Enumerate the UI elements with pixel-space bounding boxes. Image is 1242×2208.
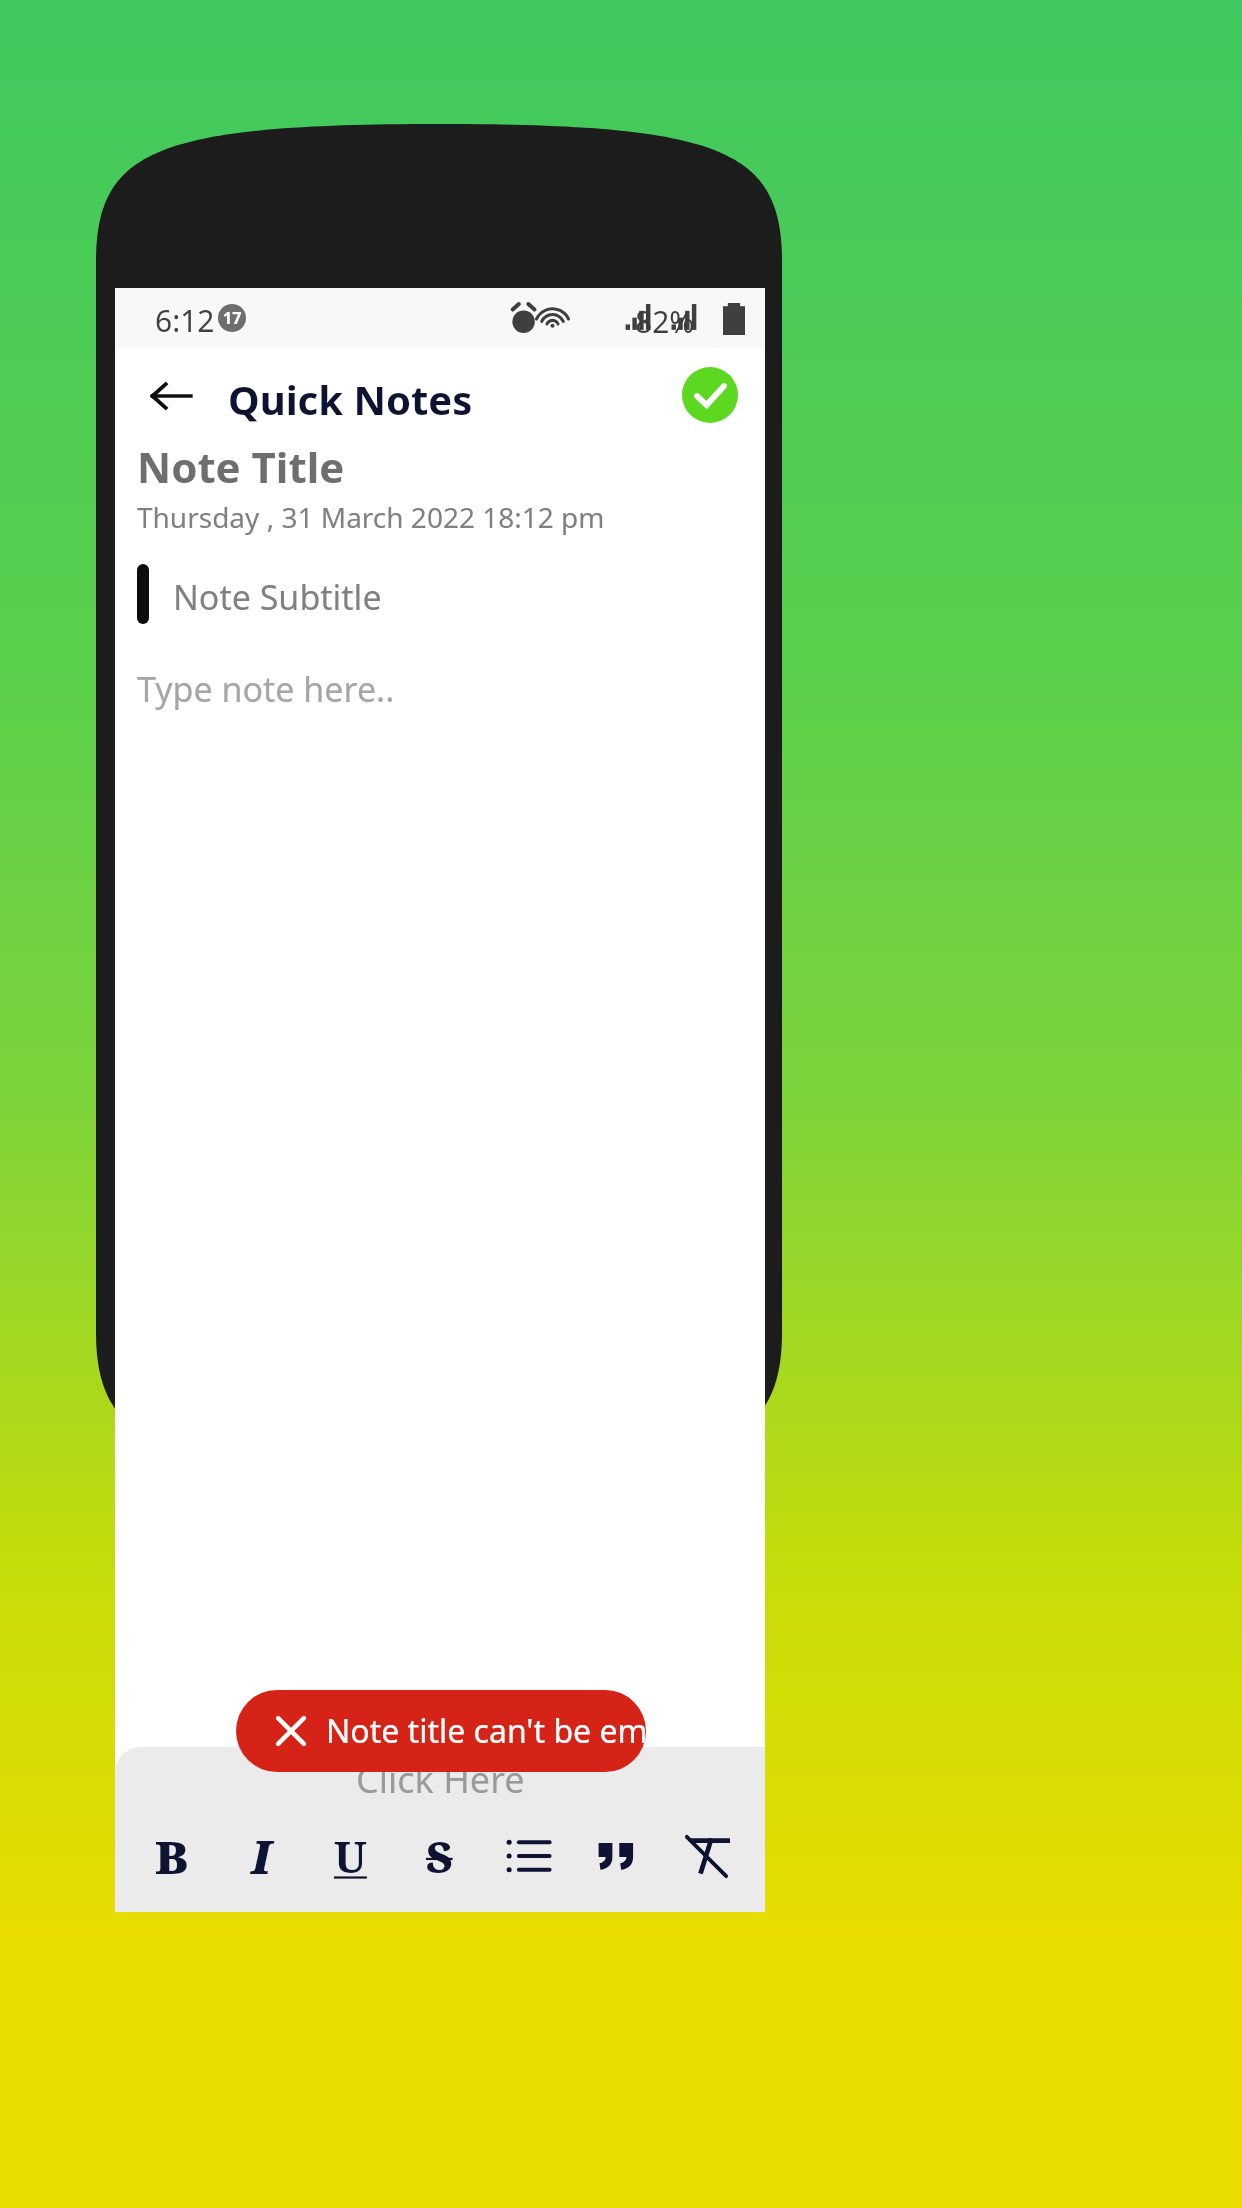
button[interactable]: Note title can't be empty! xyxy=(236,1690,646,1772)
button[interactable]: Clear formatting xyxy=(667,1817,745,1895)
staticText: Type note here.. xyxy=(137,666,395,712)
button[interactable]: Underline xyxy=(311,1817,389,1895)
staticText: U xyxy=(334,1826,367,1886)
staticText: B xyxy=(155,1825,189,1888)
button[interactable]: Quote xyxy=(578,1817,656,1895)
staticText: Thursday , 31 March 2022 18:12 pm xyxy=(137,498,605,536)
button[interactable]: Back xyxy=(133,358,209,434)
staticText: Click Here xyxy=(356,1755,525,1804)
staticText: Quick Notes xyxy=(228,372,473,426)
button[interactable]: Italic xyxy=(222,1817,300,1895)
staticText: 6:12 xyxy=(155,300,215,341)
staticText: 17 xyxy=(223,307,242,329)
staticText: Note Subtitle xyxy=(173,574,382,620)
staticText: 82% xyxy=(635,301,695,342)
staticText: I xyxy=(251,1825,271,1888)
staticText: Note Title xyxy=(137,438,345,495)
staticText: S xyxy=(426,1826,453,1886)
button[interactable]: Bold xyxy=(133,1817,211,1895)
button[interactable]: Strikethrough xyxy=(400,1817,478,1895)
staticText: Note title can't be empty! xyxy=(326,1709,646,1753)
button[interactable]: Save note xyxy=(675,360,745,430)
button[interactable]: Bullet list xyxy=(489,1817,567,1895)
